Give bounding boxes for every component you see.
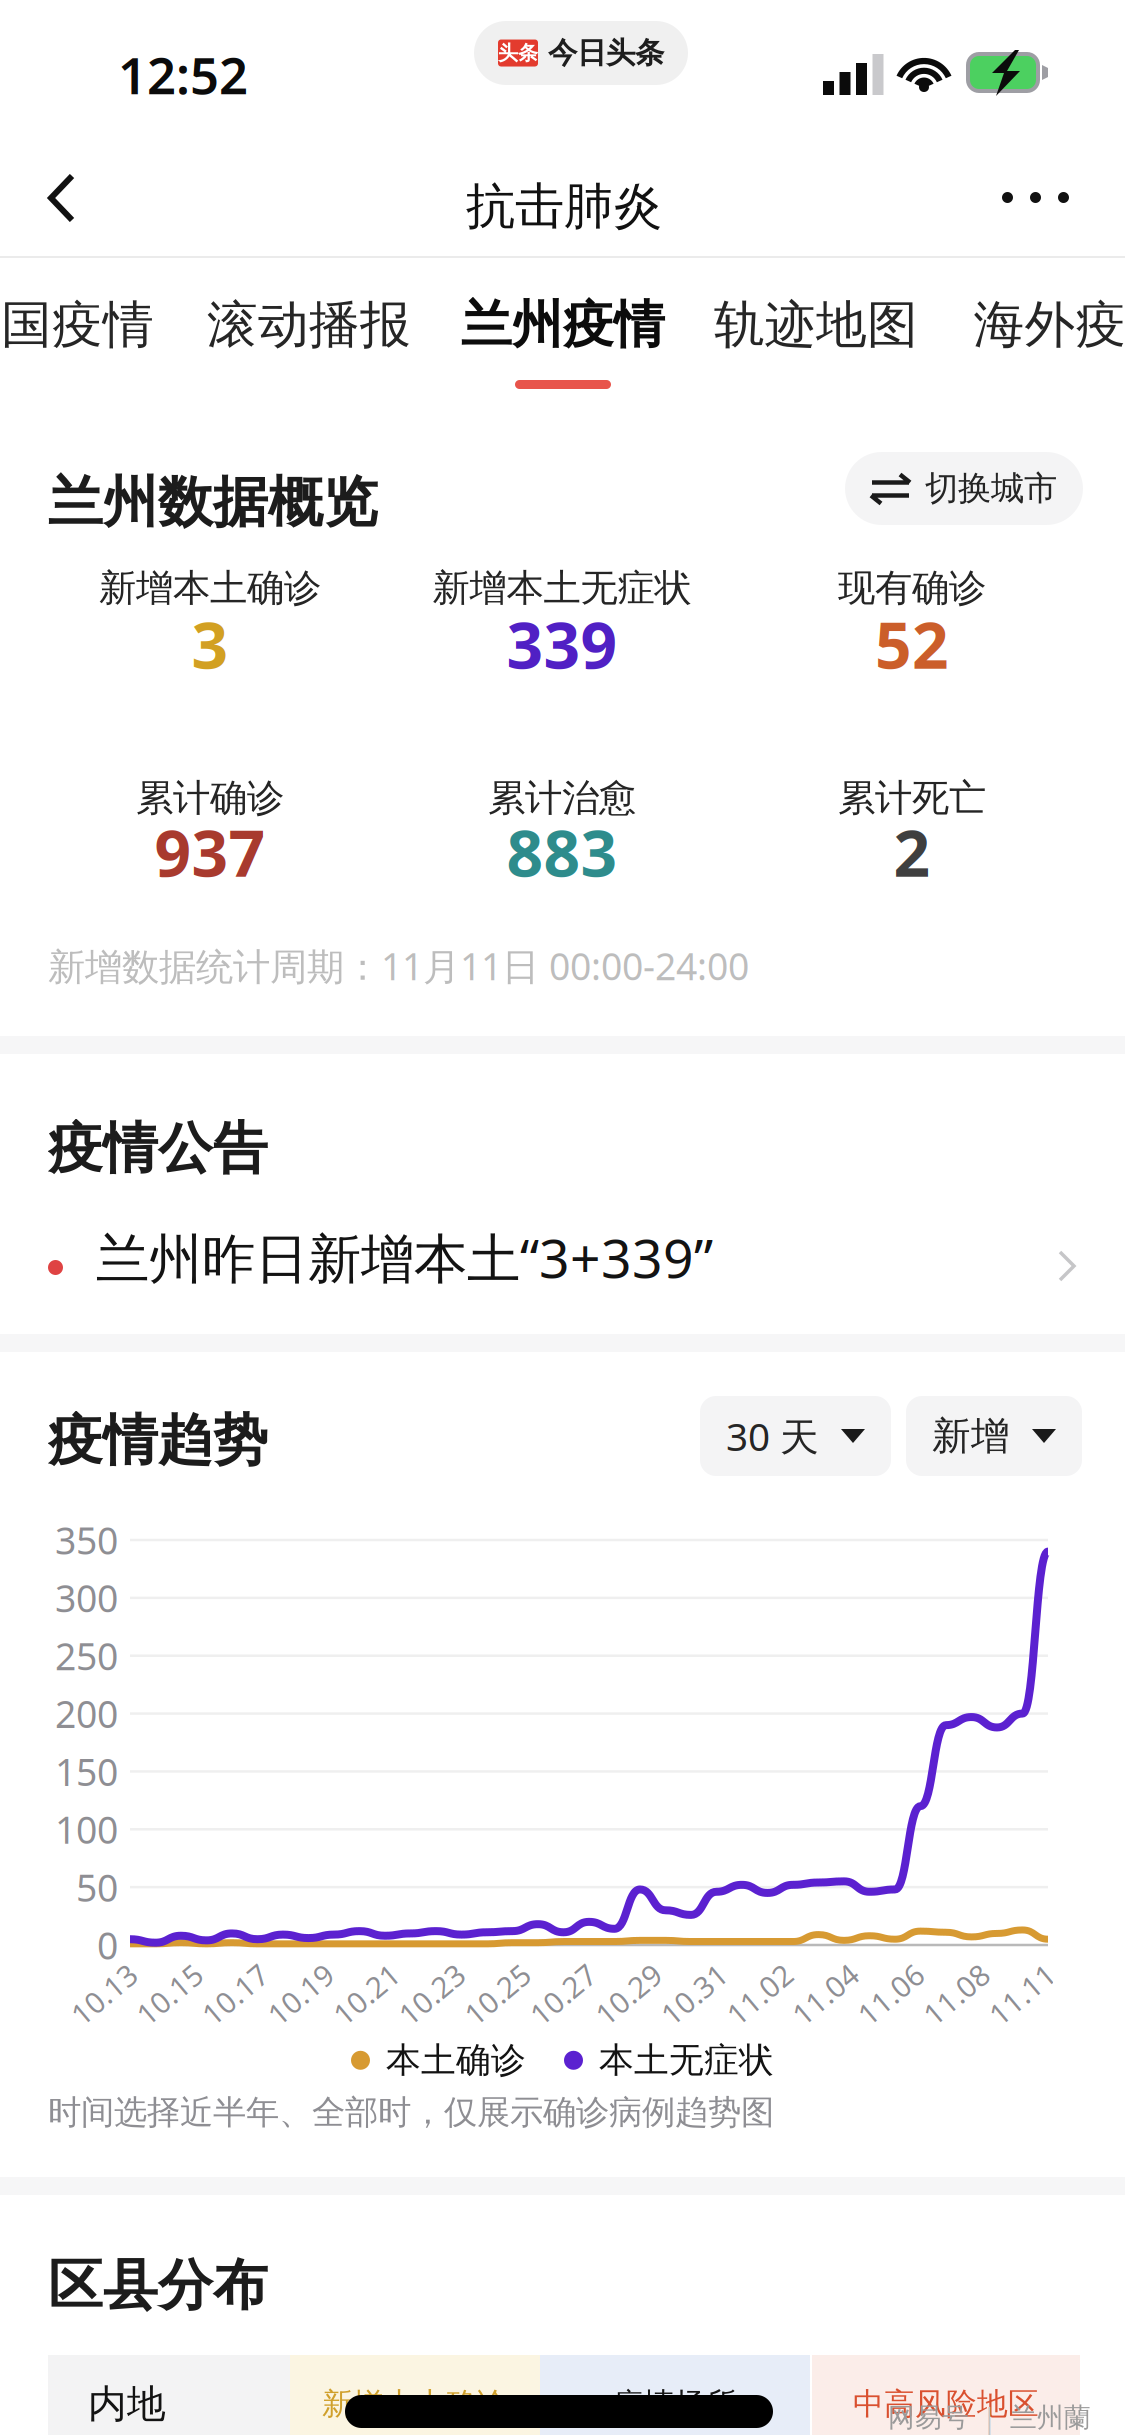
staticText: 11.02	[722, 1974, 798, 2013]
staticText: 新增本土确诊	[99, 565, 321, 611]
staticText: 兰州疫情	[461, 294, 665, 356]
staticText: 兰州数据概览	[48, 469, 378, 536]
staticText: 50	[76, 1862, 118, 1912]
staticText: 疫情场所	[613, 2385, 737, 2423]
staticText: 30 天	[726, 1410, 819, 1462]
staticText: 100	[55, 1804, 118, 1854]
button[interactable]: Back	[0, 140, 116, 256]
staticText: 10.15	[132, 1974, 208, 2013]
staticText: 疫情趋势	[48, 1407, 268, 1474]
staticText: 兰州昨日新增本土“3+339”	[96, 1222, 713, 1293]
button[interactable]: 滚动播报	[210, 258, 408, 392]
staticText: 350	[55, 1515, 118, 1565]
staticText: 时间选择近半年、全部时，仅展示确诊病例趋势图	[48, 2092, 774, 2133]
staticText: 0	[97, 1920, 118, 1970]
staticText: 累计确诊	[136, 775, 284, 821]
staticText: 内地	[88, 2380, 166, 2428]
button[interactable]: 轨迹地图	[718, 258, 914, 392]
staticText: |	[982, 2400, 997, 2435]
staticText: 10.19	[263, 1974, 339, 2013]
staticText: 10.25	[459, 1974, 535, 2013]
staticText: 轨迹地图	[714, 294, 918, 356]
staticText: 本土无症状	[599, 2039, 774, 2082]
staticText: 937	[154, 809, 265, 894]
staticText: 2	[893, 809, 930, 894]
staticText: 抗击肺炎	[466, 176, 662, 237]
staticText: 头条	[498, 41, 538, 65]
staticText: 切换城市	[925, 468, 1057, 509]
button[interactable]: 内地	[48, 2355, 290, 2435]
staticText: 国疫情	[1, 294, 154, 356]
staticText: 10.13	[66, 1974, 142, 2013]
button[interactable]: 兰州疫情	[464, 258, 662, 392]
staticText: 累计治愈	[488, 775, 636, 821]
staticText: 10.27	[525, 1974, 601, 2013]
staticText: 兰州蘭	[1010, 2401, 1091, 2434]
staticText: 250	[55, 1631, 118, 1680]
staticText: 300	[55, 1573, 118, 1623]
staticText: 区县分布	[48, 2252, 268, 2319]
staticText: 10.17	[197, 1974, 273, 2013]
staticText: 滚动播报	[207, 294, 411, 356]
staticText: 10.31	[656, 1974, 732, 2013]
button[interactable]: 新增本土确诊	[290, 2355, 540, 2435]
staticText: 883	[506, 809, 617, 894]
button[interactable]: 国疫情	[0, 258, 155, 392]
staticText: 12:52	[118, 41, 248, 108]
button[interactable]: 中高风险地区	[812, 2355, 1080, 2435]
button[interactable]: 疫情场所	[540, 2355, 810, 2435]
button[interactable]: 兰州昨日新增本土“3+339”	[0, 1222, 1125, 1328]
staticText: 150	[55, 1747, 118, 1796]
staticText: 疫情公告	[48, 1115, 268, 1182]
staticText: 200	[55, 1689, 118, 1738]
button[interactable]: 切换城市	[845, 452, 1083, 525]
staticText: 累计死亡	[838, 775, 986, 821]
staticText: 网易号	[888, 2401, 969, 2434]
staticText: 海外疫	[973, 294, 1125, 356]
staticText: 11.11	[984, 1974, 1060, 2013]
staticText: 现有确诊	[838, 565, 986, 611]
staticText: 新增本土确诊	[322, 2385, 508, 2423]
button[interactable]: 30 天	[700, 1396, 891, 1476]
button[interactable]: More	[962, 140, 1109, 255]
staticText: 新增数据统计周期：11月11日 00:00-24:00	[48, 941, 749, 991]
staticText: 10.29	[591, 1974, 667, 2013]
staticText: 3	[191, 601, 228, 686]
staticText: 11.06	[853, 1974, 929, 2013]
staticText: 中高风险地区	[853, 2385, 1039, 2423]
staticText: 10.23	[394, 1974, 470, 2013]
staticText: 新增	[932, 1412, 1010, 1460]
staticText: 10.21	[328, 1974, 404, 2013]
staticText: 新增本土无症状	[432, 565, 691, 611]
staticText: 今日头条	[548, 35, 664, 71]
staticText: 本土确诊	[386, 2039, 526, 2082]
staticText: 52	[875, 601, 949, 686]
staticText: 11.04	[787, 1974, 863, 2013]
staticText: 11.08	[918, 1974, 994, 2013]
staticText: 339	[506, 601, 617, 686]
button[interactable]: 新增	[906, 1396, 1082, 1476]
button[interactable]: 海外疫	[970, 258, 1125, 392]
